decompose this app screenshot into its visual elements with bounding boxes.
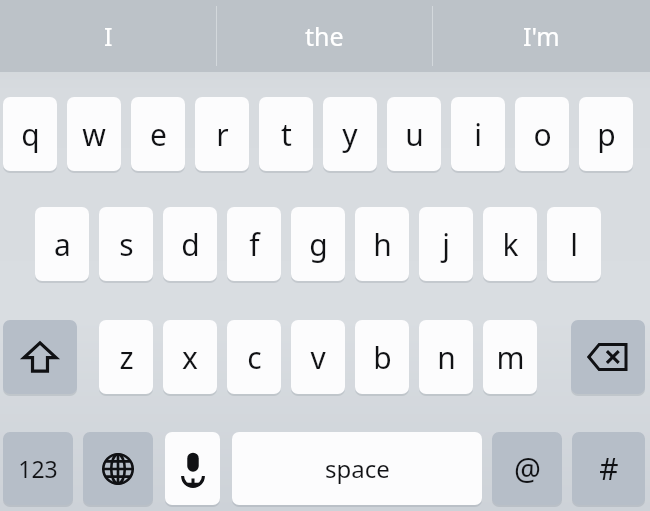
staticText: w [82,114,106,155]
button[interactable]: Shift [3,320,77,394]
staticText: I'm [523,19,560,53]
button[interactable]: c [227,320,281,394]
button[interactable]: d [163,207,217,281]
staticText: space [325,452,390,485]
button[interactable]: v [291,320,345,394]
staticText: # [599,448,619,489]
staticText: I [104,19,113,53]
button[interactable]: i [451,97,505,171]
button[interactable]: q [3,97,57,171]
button[interactable]: y [323,97,377,171]
staticText: v [310,337,326,378]
staticText: a [54,224,71,265]
staticText: g [309,224,328,265]
button[interactable]: I'm [433,0,650,72]
staticText: p [597,114,616,155]
button[interactable]: j [419,207,473,281]
button[interactable]: w [67,97,121,171]
staticText: the [305,19,344,53]
button[interactable]: n [419,320,473,394]
button[interactable]: r [195,97,249,171]
staticText: j [442,224,450,265]
staticText: q [21,114,40,155]
staticText: m [496,337,525,378]
staticText: i [474,114,482,155]
staticText: c [247,337,262,378]
staticText: z [119,337,134,378]
button[interactable]: a [35,207,89,281]
button[interactable]: @ [492,432,562,505]
button[interactable]: Voice input [165,432,220,505]
staticText: k [502,224,519,265]
button[interactable]: k [483,207,537,281]
button[interactable]: m [483,320,537,394]
button[interactable]: o [515,97,569,171]
button[interactable]: u [387,97,441,171]
staticText: @ [514,448,541,489]
button[interactable]: Backspace [571,320,645,394]
staticText: r [216,114,229,155]
button[interactable]: f [227,207,281,281]
staticText: e [150,114,167,155]
staticText: 123 [18,453,58,484]
button[interactable]: space [232,432,482,505]
staticText: n [437,337,456,378]
staticText: h [373,224,392,265]
staticText: b [373,337,392,378]
button[interactable]: h [355,207,409,281]
staticText: f [249,224,260,265]
button[interactable]: Switch keyboard [83,432,153,505]
button[interactable]: g [291,207,345,281]
button[interactable]: s [99,207,153,281]
button[interactable]: t [259,97,313,171]
staticText: o [533,114,552,155]
button[interactable]: # [572,432,645,505]
button[interactable]: p [579,97,633,171]
button[interactable]: 123 [3,432,73,505]
staticText: t [281,114,292,155]
button[interactable]: x [163,320,217,394]
button[interactable]: z [99,320,153,394]
button[interactable]: the [216,0,433,72]
button[interactable]: e [131,97,185,171]
button[interactable]: l [547,207,601,281]
staticText: y [342,114,358,155]
button[interactable]: b [355,320,409,394]
staticText: s [119,224,134,265]
staticText: d [181,224,200,265]
staticText: x [182,337,198,378]
button[interactable]: I [0,0,216,72]
staticText: u [405,114,424,155]
staticText: l [570,224,578,265]
